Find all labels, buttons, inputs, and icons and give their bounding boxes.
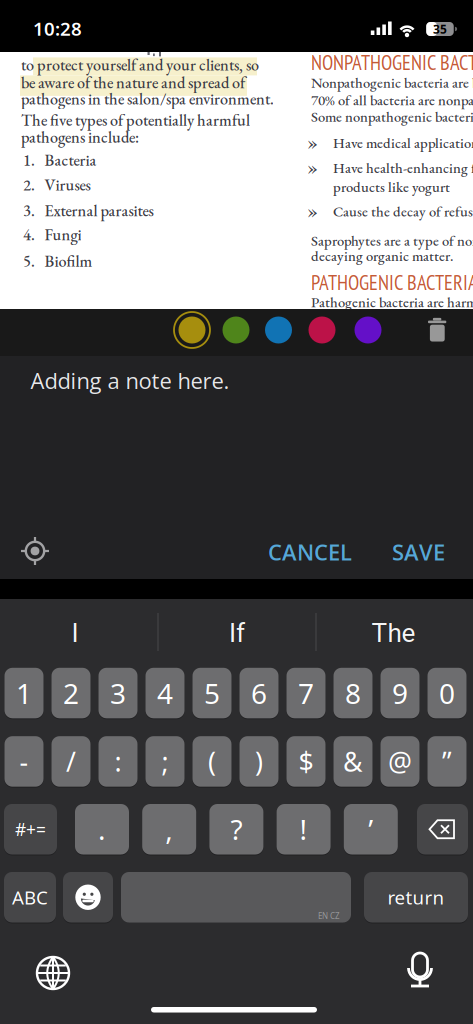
button[interactable]: Red highlight	[308, 316, 335, 343]
button[interactable]: Delete highlight	[423, 316, 451, 344]
staticText: 4.	[23, 224, 35, 245]
button[interactable]: (	[192, 736, 231, 787]
staticText: CANCEL	[268, 537, 352, 567]
staticText: return	[387, 885, 444, 910]
button[interactable]: 2	[51, 668, 90, 718]
staticText: 5.	[23, 250, 35, 271]
staticText: $	[298, 744, 313, 779]
staticText: 1	[16, 674, 32, 712]
button[interactable]: SAVE	[383, 532, 453, 572]
button[interactable]: :	[98, 736, 137, 787]
staticText: Have medical applications, su	[333, 133, 473, 152]
staticText: Have health-enhancing functi	[333, 158, 473, 177]
button[interactable]: ’	[344, 804, 398, 854]
staticText: Some nonpathogenic bacteria c	[311, 107, 473, 126]
staticText: be aware of the nature and spread of	[21, 72, 245, 93]
staticText: External parasites	[44, 200, 153, 221]
staticText: to protect yourself and your clients, so	[21, 54, 259, 75]
button[interactable]: -	[4, 736, 43, 787]
button[interactable]: )	[239, 736, 278, 787]
staticText: If	[229, 618, 245, 648]
button[interactable]: Next keyboard	[35, 955, 71, 991]
staticText: Pathogenic bacteria are harmf	[311, 293, 473, 312]
staticText: &	[343, 744, 363, 779]
button[interactable]: @	[380, 736, 419, 787]
staticText: PATHOGENIC BACTERIA	[311, 269, 473, 296]
button[interactable]: ?	[209, 804, 263, 854]
button[interactable]: /	[51, 736, 90, 787]
button[interactable]: 7	[286, 668, 325, 718]
button[interactable]: Locate highlight	[20, 536, 50, 566]
button[interactable]: #+=	[4, 804, 57, 854]
staticText: 70% of all bacteria are nonpath	[311, 91, 473, 110]
staticText: 3	[110, 674, 126, 712]
button[interactable]: CANCEL	[255, 532, 365, 572]
staticText: »	[307, 200, 317, 222]
staticText: 4	[157, 674, 173, 712]
button[interactable]: ;	[145, 736, 184, 787]
staticText: 7	[298, 674, 314, 712]
staticText: products like yogurt	[333, 177, 450, 196]
staticText: 10:28	[33, 16, 82, 41]
button[interactable]: Purple highlight	[354, 316, 381, 343]
staticText: 2.	[23, 174, 35, 195]
staticText: »	[307, 131, 317, 154]
staticText: Fungi	[44, 224, 81, 245]
staticText: Bacteria	[44, 150, 96, 171]
button[interactable]: Yellow highlight	[173, 311, 211, 349]
staticText: 8	[345, 674, 361, 712]
button[interactable]: Green highlight	[222, 316, 249, 343]
staticText: NONPATHOGENIC BACTERIA	[311, 49, 473, 76]
button[interactable]: !	[277, 804, 331, 854]
button[interactable]: 0	[427, 668, 466, 718]
button[interactable]: ABC	[4, 872, 56, 922]
staticText: 3.	[23, 200, 35, 221]
button[interactable]: .	[75, 804, 129, 854]
staticText: ”	[442, 744, 452, 779]
staticText: !	[300, 811, 308, 848]
staticText: 0	[439, 674, 455, 712]
staticText: I	[71, 618, 78, 648]
button[interactable]: Emoji	[63, 872, 113, 922]
staticText: 5	[204, 674, 220, 712]
button[interactable]: Space	[121, 872, 351, 922]
staticText: Adding a note here.	[30, 365, 229, 395]
staticText: SAVE	[392, 537, 445, 567]
button[interactable]: 4	[145, 668, 184, 718]
button[interactable]: If	[162, 611, 312, 655]
staticText: The	[371, 618, 415, 648]
button[interactable]: $	[286, 736, 325, 787]
button[interactable]: &	[333, 736, 372, 787]
button[interactable]: return	[364, 872, 468, 922]
staticText: 1.	[23, 150, 35, 171]
staticText: Cause the decay of refuse, im	[333, 202, 473, 221]
button[interactable]: 5	[192, 668, 231, 718]
staticText: EN CZ	[318, 910, 340, 921]
button[interactable]: 6	[239, 668, 278, 718]
button[interactable]: ,	[142, 804, 196, 854]
staticText: @	[388, 744, 412, 779]
staticText: (	[208, 744, 216, 779]
button[interactable]: ”	[427, 736, 466, 787]
button[interactable]: 1	[4, 668, 43, 718]
staticText: .	[98, 811, 106, 848]
staticText: -	[19, 744, 28, 779]
staticText: Biofilm	[44, 250, 92, 271]
button[interactable]: 8	[333, 668, 372, 718]
button[interactable]: I	[0, 611, 150, 655]
staticText: 6	[251, 674, 267, 712]
button[interactable]: 9	[380, 668, 419, 718]
staticText: Viruses	[44, 174, 90, 195]
staticText: »	[307, 156, 317, 179]
button[interactable]: Dictate	[407, 952, 433, 990]
button[interactable]: 3	[98, 668, 137, 718]
button[interactable]: The	[318, 611, 468, 655]
staticText: ABC	[12, 885, 48, 910]
staticText: 9	[392, 674, 408, 712]
staticText: ;	[161, 744, 168, 779]
staticText: /	[66, 744, 76, 779]
button[interactable]: Blue highlight	[265, 316, 292, 343]
staticText: )	[255, 744, 263, 779]
staticText: pathogens include:	[21, 126, 139, 148]
button[interactable]: Delete	[417, 804, 468, 854]
